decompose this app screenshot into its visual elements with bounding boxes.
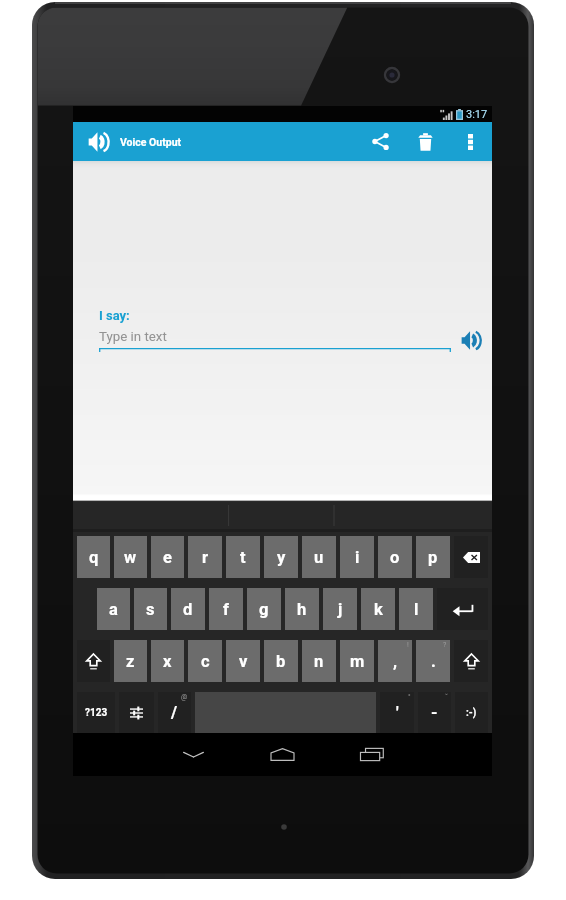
staticText: v bbox=[239, 652, 248, 671]
staticText: c bbox=[201, 652, 210, 671]
button[interactable]: ' bbox=[380, 692, 414, 733]
staticText: ' bbox=[396, 703, 399, 722]
staticText: r bbox=[202, 548, 209, 567]
button[interactable]: v bbox=[226, 640, 260, 682]
button[interactable]: Backspace bbox=[454, 536, 488, 578]
button[interactable]: y bbox=[264, 536, 298, 578]
button[interactable]: o bbox=[378, 536, 412, 578]
staticText: :-) bbox=[466, 707, 477, 719]
button[interactable]: s bbox=[134, 588, 167, 630]
staticText: . bbox=[431, 652, 436, 671]
staticText: n bbox=[314, 652, 324, 671]
button[interactable]: q bbox=[77, 536, 110, 578]
staticText: b bbox=[276, 652, 286, 671]
button[interactable]: Home bbox=[262, 733, 302, 775]
staticText: s bbox=[146, 600, 155, 619]
button[interactable]: Delete bbox=[405, 122, 445, 161]
staticText: ˘ bbox=[445, 693, 448, 701]
button[interactable]: Voice Output bbox=[86, 129, 112, 155]
staticText: m bbox=[350, 652, 365, 671]
button[interactable]: - bbox=[418, 692, 451, 733]
staticText: t bbox=[240, 548, 246, 567]
staticText: g bbox=[259, 600, 269, 619]
staticText: e bbox=[163, 548, 172, 567]
button[interactable]: ?123 bbox=[77, 692, 115, 733]
staticText: z bbox=[126, 652, 135, 671]
button[interactable]: l bbox=[399, 588, 433, 630]
button[interactable]: g bbox=[247, 588, 281, 630]
staticText: I say: bbox=[99, 308, 130, 323]
button[interactable]: z bbox=[114, 640, 147, 682]
button[interactable]: Shift bbox=[454, 640, 488, 682]
staticText: x bbox=[163, 652, 172, 671]
staticText: ? bbox=[443, 641, 447, 649]
button[interactable]: x bbox=[151, 640, 184, 682]
button[interactable]: k bbox=[361, 588, 395, 630]
button[interactable]: d bbox=[171, 588, 205, 630]
staticText: - bbox=[431, 703, 438, 722]
button[interactable]: n bbox=[302, 640, 336, 682]
staticText: f bbox=[223, 600, 229, 619]
button[interactable]: Recents bbox=[352, 733, 392, 775]
staticText: k bbox=[374, 600, 383, 619]
staticText: i bbox=[355, 548, 360, 567]
button[interactable]: t bbox=[226, 536, 260, 578]
staticText: a bbox=[109, 600, 118, 619]
button[interactable]: , bbox=[378, 640, 412, 682]
staticText: j bbox=[338, 600, 343, 619]
staticText: p bbox=[428, 548, 438, 567]
staticText: h bbox=[297, 600, 307, 619]
button[interactable]: Shift bbox=[77, 640, 110, 682]
staticText: l bbox=[414, 600, 419, 619]
staticText: ! bbox=[407, 641, 409, 649]
button[interactable]: p bbox=[416, 536, 450, 578]
button[interactable]: Input settings bbox=[119, 692, 154, 733]
staticText: o bbox=[390, 548, 400, 567]
button[interactable]: h bbox=[285, 588, 319, 630]
button[interactable]: w bbox=[114, 536, 147, 578]
staticText: , bbox=[393, 652, 398, 671]
button[interactable]: More options bbox=[450, 122, 490, 161]
button[interactable]: Hide keyboard bbox=[173, 733, 213, 775]
button[interactable]: Share bbox=[360, 122, 400, 161]
staticText: y bbox=[277, 548, 286, 567]
staticText: Voice Output bbox=[120, 136, 182, 148]
staticText: @ bbox=[181, 693, 188, 701]
button[interactable]: c bbox=[188, 640, 222, 682]
button[interactable]: r bbox=[188, 536, 222, 578]
button[interactable]: u bbox=[302, 536, 336, 578]
staticText: / bbox=[171, 703, 178, 722]
staticText: u bbox=[314, 548, 324, 567]
button[interactable]: m bbox=[340, 640, 374, 682]
staticText: ?123 bbox=[85, 707, 108, 719]
button[interactable]: j bbox=[323, 588, 357, 630]
staticText: Type in text bbox=[99, 329, 167, 345]
button[interactable]: Speak bbox=[456, 325, 486, 355]
button[interactable]: Enter bbox=[437, 588, 488, 630]
staticText: 3:17 bbox=[466, 108, 488, 121]
button[interactable]: . bbox=[416, 640, 450, 682]
button[interactable]: / bbox=[158, 692, 191, 733]
button[interactable]: :-) bbox=[455, 692, 488, 733]
button[interactable]: a bbox=[97, 588, 130, 630]
staticText: q bbox=[89, 548, 99, 567]
button[interactable]: e bbox=[151, 536, 184, 578]
staticText: ° bbox=[408, 693, 411, 701]
staticText: d bbox=[183, 600, 193, 619]
button[interactable]: b bbox=[264, 640, 298, 682]
button[interactable]: i bbox=[340, 536, 374, 578]
staticText: w bbox=[124, 548, 137, 567]
button[interactable]: f bbox=[209, 588, 243, 630]
